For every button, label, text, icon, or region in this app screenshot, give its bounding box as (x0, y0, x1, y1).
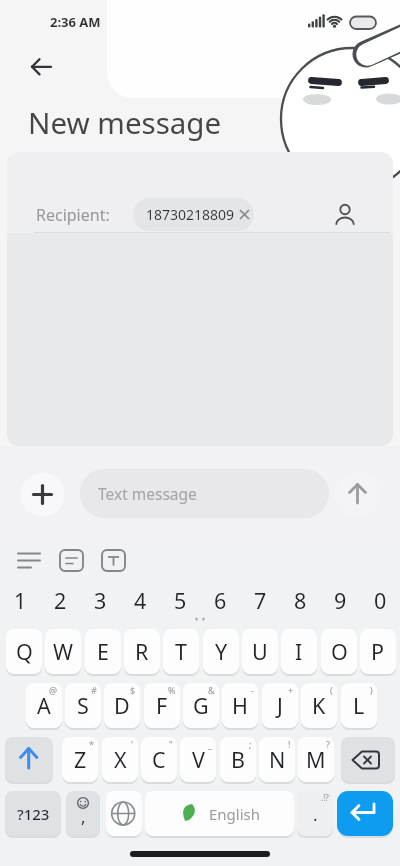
staticText: ' (131, 738, 134, 750)
staticText: C (152, 745, 166, 774)
button[interactable]: M (298, 737, 334, 782)
button[interactable]: J (262, 683, 298, 728)
staticText: T (175, 637, 187, 666)
staticText: English (209, 804, 261, 824)
staticText: Q (16, 637, 33, 666)
button[interactable]: Z (62, 737, 98, 782)
button[interactable]: G (183, 683, 219, 728)
button[interactable] (5, 737, 53, 782)
staticText: 8 (294, 586, 307, 615)
button[interactable]: D (104, 683, 140, 728)
button[interactable]: , (66, 791, 100, 836)
button[interactable]: X (102, 737, 138, 782)
button[interactable]: 8 (280, 584, 320, 616)
button[interactable]: 1 (0, 584, 40, 616)
staticText: R (135, 637, 149, 666)
staticText: ; (249, 738, 252, 750)
button[interactable]: A (26, 683, 62, 728)
staticText: Recipient: (36, 204, 110, 226)
staticText: Z (74, 745, 87, 774)
button[interactable]: Text message (80, 469, 329, 518)
button[interactable]: E (85, 629, 121, 674)
button[interactable]: U (242, 629, 278, 674)
button[interactable] (12, 546, 48, 576)
button[interactable]: English (145, 791, 294, 836)
button[interactable]: 5 (160, 584, 200, 616)
button[interactable]: . (297, 791, 333, 836)
button[interactable] (335, 472, 380, 517)
button[interactable]: P (360, 629, 396, 674)
staticText: _ (208, 738, 212, 750)
staticText: 4 (134, 586, 147, 615)
staticText: 1 (14, 586, 27, 615)
staticText: B (231, 745, 245, 774)
button[interactable]: Y (203, 629, 239, 674)
button[interactable] (20, 53, 64, 83)
button[interactable]: R (124, 629, 160, 674)
staticText: $ (130, 684, 136, 696)
staticText: " (169, 738, 173, 750)
button[interactable]: O (321, 629, 357, 674)
staticText: ? (326, 738, 330, 750)
button[interactable] (341, 737, 395, 782)
button[interactable] (98, 546, 134, 576)
button[interactable] (330, 196, 362, 232)
staticText: ) (370, 684, 373, 696)
staticText: New message (28, 102, 222, 142)
staticText: A (37, 691, 51, 720)
button[interactable]: T (163, 629, 199, 674)
staticText: ( (330, 684, 333, 696)
button[interactable]: 18730218809 (133, 198, 254, 231)
button[interactable]: ?123 (5, 791, 61, 836)
button[interactable]: 2 (40, 584, 80, 616)
staticText: D (114, 691, 130, 720)
staticText: U (252, 637, 268, 666)
staticText: N (269, 745, 286, 774)
button[interactable]: N (259, 737, 295, 782)
button[interactable]: H (222, 683, 258, 728)
staticText: K (312, 691, 326, 720)
button[interactable]: K (301, 683, 337, 728)
button[interactable] (106, 791, 142, 836)
staticText: # (91, 684, 97, 696)
staticText: G (193, 691, 209, 720)
staticText: 9 (334, 586, 347, 615)
staticText: Text message (98, 483, 197, 504)
staticText: * (89, 738, 94, 750)
button[interactable] (22, 473, 64, 515)
button[interactable]: F (144, 683, 180, 728)
button[interactable]: S (65, 683, 101, 728)
button[interactable]: 4 (120, 584, 160, 616)
button[interactable]: 0 (360, 584, 400, 616)
staticText: & (208, 684, 215, 696)
staticText: V (192, 745, 205, 774)
staticText: 2 (54, 586, 67, 615)
button[interactable]: I (281, 629, 317, 674)
staticText: 2:36 AM (50, 13, 101, 31)
staticText: P (371, 637, 385, 666)
button[interactable]: 3 (80, 584, 120, 616)
staticText: 3 (94, 586, 107, 615)
staticText: .!? (321, 792, 329, 803)
button[interactable]: V (180, 737, 216, 782)
button[interactable]: 6 (200, 584, 240, 616)
staticText: X (114, 745, 127, 774)
button[interactable]: Q (6, 629, 42, 674)
button[interactable] (130, 851, 270, 857)
staticText: 7 (254, 586, 267, 615)
staticText: F (156, 691, 168, 720)
button[interactable]: B (220, 737, 256, 782)
staticText: O (331, 637, 348, 666)
button[interactable]: 9 (320, 584, 360, 616)
button[interactable] (56, 546, 92, 576)
button[interactable]: C (141, 737, 177, 782)
staticText: S (77, 691, 89, 720)
button[interactable]: L (341, 683, 377, 728)
staticText: H (232, 691, 248, 720)
staticText: ?123 (17, 804, 50, 824)
staticText: + (288, 684, 294, 696)
button[interactable] (337, 791, 393, 836)
button[interactable]: 7 (240, 584, 280, 616)
staticText: 5 (174, 586, 187, 615)
button[interactable]: W (45, 629, 81, 674)
